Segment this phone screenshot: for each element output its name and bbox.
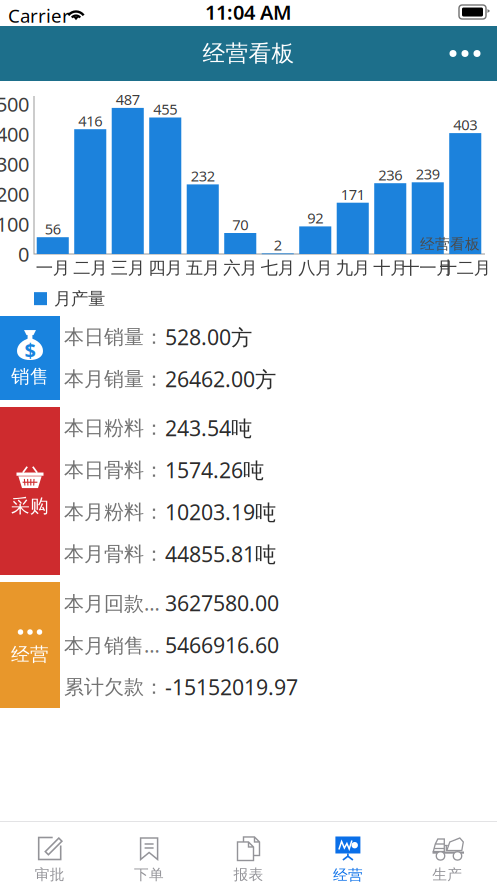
staticText: 56 bbox=[45, 219, 61, 238]
button[interactable]: 更多 bbox=[433, 26, 497, 81]
button[interactable]: 报表 bbox=[199, 822, 298, 883]
staticText: 416 bbox=[78, 111, 102, 130]
staticText: 四月 bbox=[148, 257, 182, 279]
staticText: 十一月 bbox=[402, 257, 453, 279]
staticText: 审批 bbox=[35, 865, 65, 883]
staticText: 本月销量： bbox=[64, 367, 164, 391]
staticText: 一月 bbox=[36, 257, 70, 279]
staticText: 经营看板 bbox=[420, 235, 480, 253]
staticText: 171 bbox=[341, 184, 365, 204]
staticText: 455 bbox=[153, 99, 177, 119]
staticText: 本日粉料： bbox=[64, 416, 164, 440]
staticText: 五月 bbox=[186, 257, 220, 279]
staticText: 本日骨料： bbox=[64, 458, 164, 482]
staticText: $ bbox=[24, 337, 35, 363]
staticText: 2 bbox=[274, 235, 282, 255]
staticText: 500 bbox=[0, 91, 29, 117]
staticText: 92 bbox=[307, 208, 323, 228]
staticText: 243.54吨 bbox=[165, 414, 252, 442]
staticText: 100 bbox=[0, 211, 29, 237]
staticText: 528.00方 bbox=[165, 323, 252, 351]
staticText: 本月骨料： bbox=[64, 542, 164, 566]
button[interactable]: 采购 bbox=[0, 407, 60, 575]
staticText: 生产 bbox=[432, 865, 462, 883]
staticText: 239 bbox=[416, 164, 440, 184]
staticText: 403 bbox=[453, 115, 477, 134]
staticText: 200 bbox=[0, 181, 29, 207]
staticText: 三月 bbox=[111, 257, 145, 279]
staticText: 八月 bbox=[298, 257, 332, 279]
staticText: 0 bbox=[18, 241, 29, 267]
staticText: 本日销量： bbox=[64, 325, 164, 349]
staticText: 70 bbox=[232, 215, 248, 234]
staticText: 九月 bbox=[336, 257, 370, 279]
staticText: 232 bbox=[191, 166, 215, 186]
staticText: 采购 bbox=[11, 494, 49, 517]
button[interactable]: 经营 bbox=[0, 582, 60, 708]
staticText: 经营看板 bbox=[202, 40, 294, 67]
staticText: 487 bbox=[116, 90, 140, 109]
staticText: 400 bbox=[0, 121, 29, 147]
staticText: 本月回款… bbox=[64, 590, 160, 616]
staticText: 销售 bbox=[11, 365, 49, 388]
staticText: 经营 bbox=[11, 643, 49, 666]
staticText: 3627580.00 bbox=[165, 589, 279, 617]
staticText: 300 bbox=[0, 151, 29, 177]
button[interactable]: 审批 bbox=[0, 822, 99, 883]
button[interactable]: 生产 bbox=[398, 822, 497, 883]
staticText: 44855.81吨 bbox=[165, 540, 276, 568]
button[interactable]: 经营 bbox=[298, 822, 398, 883]
button[interactable]: $ bbox=[0, 316, 60, 400]
staticText: 报表 bbox=[233, 865, 263, 883]
staticText: 下单 bbox=[134, 865, 164, 883]
staticText: 十月 bbox=[373, 257, 407, 279]
staticText: 七月 bbox=[261, 257, 295, 279]
staticText: 六月 bbox=[223, 257, 257, 279]
staticText: -15152019.97 bbox=[165, 673, 298, 701]
staticText: 月产量 bbox=[54, 288, 105, 309]
staticText: Carrier bbox=[8, 3, 70, 28]
staticText: 本月粉料： bbox=[64, 500, 164, 524]
staticText: 10203.19吨 bbox=[165, 498, 276, 526]
staticText: 本月销售… bbox=[64, 632, 160, 658]
staticText: 11:04 AM bbox=[205, 0, 292, 25]
staticText: 经营 bbox=[333, 866, 363, 883]
staticText: 十二月 bbox=[440, 257, 491, 279]
staticText: 累计欠款： bbox=[64, 675, 164, 699]
staticText: 236 bbox=[378, 165, 402, 184]
staticText: 5466916.60 bbox=[165, 631, 279, 659]
staticText: 二月 bbox=[73, 257, 107, 279]
button[interactable]: 下单 bbox=[99, 822, 199, 883]
staticText: 26462.00方 bbox=[165, 365, 276, 393]
staticText: 1574.26吨 bbox=[165, 456, 264, 484]
